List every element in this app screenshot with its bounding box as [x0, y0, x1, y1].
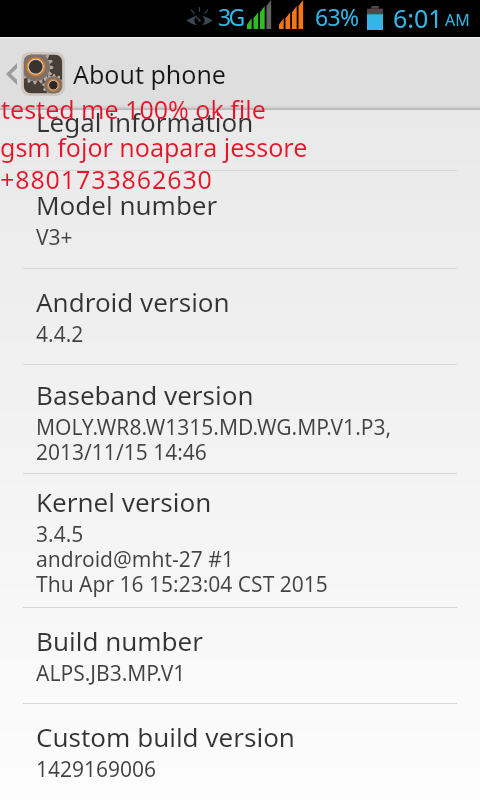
staticText: Build number [36, 623, 203, 658]
staticText: +8801733862630 [0, 162, 213, 196]
button[interactable]: Legal information [0, 110, 480, 170]
staticText: About phone [73, 57, 226, 91]
staticText: Custom build version [36, 719, 295, 754]
staticText: 3.4.5 [36, 520, 84, 549]
staticText: Legal information [36, 104, 254, 139]
other: Back [6, 63, 17, 85]
staticText: 6:01 [393, 1, 443, 35]
button[interactable]: Android version [0, 269, 480, 364]
staticText: Baseband version [36, 377, 254, 412]
button[interactable]: Back [0, 38, 480, 110]
staticText: Kernel version [36, 484, 212, 519]
staticText: MOLY.WR8.W1315.MD.WG.MP.V1.P3, [36, 413, 392, 442]
staticText: V3+ [36, 223, 73, 252]
staticText: Android version [36, 284, 230, 319]
staticText: ALPS.JB3.MP.V1 [36, 659, 186, 688]
staticText: Model number [36, 187, 218, 222]
button[interactable]: Build number [0, 608, 480, 703]
staticText: 1429169006 [36, 755, 157, 784]
staticText: tested me 100% ok file [1, 92, 266, 126]
staticText: gsm fojor noapara jessore [0, 130, 308, 164]
staticText: android@mht-27 #1 [36, 545, 234, 574]
button[interactable]: Custom build version [0, 704, 480, 800]
staticText: AM [445, 9, 470, 31]
button[interactable]: Baseband version [0, 365, 480, 473]
button[interactable]: Kernel version [0, 474, 480, 607]
staticText: 3G [218, 1, 243, 32]
staticText: 2013/11/15 14:46 [36, 438, 207, 467]
staticText: 63% [315, 1, 359, 32]
staticText: 4.4.2 [36, 320, 84, 349]
button[interactable]: Model number [0, 171, 480, 268]
staticText: Thu Apr 16 15:23:04 CST 2015 [36, 570, 328, 599]
